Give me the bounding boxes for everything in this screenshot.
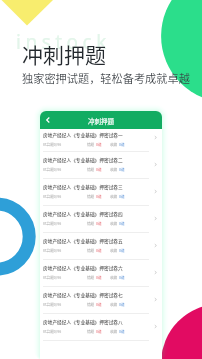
staticText: 0道 [96, 221, 102, 226]
staticText: 0道 [119, 275, 125, 280]
staticText: 错题 [87, 248, 95, 253]
staticText: 错题 [87, 221, 95, 226]
staticText: 0道 [96, 275, 102, 280]
button[interactable]: 房地产经纪人《专业基础》押密试卷二 [40, 152, 162, 179]
staticText: 收藏 [110, 302, 118, 307]
staticText: 房地产经纪人《专业基础》押密试卷三 [43, 184, 123, 191]
staticText: 错题 [87, 302, 95, 307]
staticText: 收藏 [110, 248, 118, 253]
staticText: 已答题0/96 [43, 275, 62, 280]
staticText: 0道 [96, 142, 102, 147]
button[interactable]: 房地产经纪人《专业基础》押密试卷五 [40, 233, 162, 260]
staticText: 已答题0/96 [43, 221, 62, 226]
staticText: 0道 [96, 194, 102, 199]
button[interactable]: 房地产经纪人《专业基础》押密试卷七 [40, 287, 162, 314]
staticText: 房地产经纪人《专业基础》押密试卷八 [43, 319, 123, 326]
staticText: 错题 [87, 275, 95, 280]
staticText: 已答题0/96 [43, 194, 62, 199]
staticText: 收藏 [110, 275, 118, 280]
staticText: 房地产经纪人《专业基础》押密试卷六 [43, 265, 123, 272]
staticText: 房地产经纪人《专业基础》押密试卷七 [43, 292, 123, 299]
staticText: 收藏 [110, 142, 118, 147]
staticText: 独家密押试题，轻松备考成就卓越 [22, 70, 190, 86]
staticText: 房地产经纪人《专业基础》押密试卷一 [43, 132, 123, 139]
staticText: 0道 [119, 329, 125, 334]
button[interactable]: 房地产经纪人《专业基础》押密试卷八 [40, 314, 162, 341]
staticText: 错题 [87, 167, 95, 172]
button[interactable]: 房地产经纪人《专业基础》押密试卷六 [40, 260, 162, 287]
staticText: 已答题0/96 [43, 329, 62, 334]
staticText: 房地产经纪人《专业基础》押密试卷四 [43, 211, 123, 218]
staticText: 0道 [119, 194, 125, 199]
staticText: 0道 [119, 167, 125, 172]
button[interactable]: 房地产经纪人《专业基础》押密试卷一 [40, 129, 162, 152]
staticText: 已答题0/96 [43, 167, 62, 172]
staticText: 冲刺押题 [88, 116, 114, 125]
staticText: 0道 [119, 142, 125, 147]
staticText: 收藏 [110, 194, 118, 199]
staticText: 收藏 [110, 329, 118, 334]
staticText: 0道 [96, 248, 102, 253]
staticText: 0道 [96, 167, 102, 172]
staticText: 收藏 [110, 167, 118, 172]
staticText: 错题 [87, 194, 95, 199]
staticText: 房地产经纪人《专业基础》押密试卷五 [43, 238, 123, 245]
staticText: 房地产经纪人《专业基础》押密试卷二 [43, 157, 123, 164]
staticText: 错题 [87, 142, 95, 147]
staticText: 冲刺押题 [22, 39, 106, 69]
button[interactable]: Back [40, 111, 56, 129]
staticText: 收藏 [110, 221, 118, 226]
staticText: 已答题0/96 [43, 142, 62, 147]
button[interactable]: 房地产经纪人《专业基础》押密试卷三 [40, 179, 162, 206]
staticText: 错题 [87, 329, 95, 334]
staticText: 已答题0/96 [43, 302, 62, 307]
staticText: 已答题0/96 [43, 248, 62, 253]
staticText: 0道 [119, 302, 125, 307]
button[interactable]: 房地产经纪人《专业基础》押密试卷四 [40, 206, 162, 233]
staticText: instock [16, 29, 111, 55]
staticText: 0道 [96, 302, 102, 307]
staticText: 0道 [96, 329, 102, 334]
staticText: 0道 [119, 248, 125, 253]
staticText: 0道 [119, 221, 125, 226]
